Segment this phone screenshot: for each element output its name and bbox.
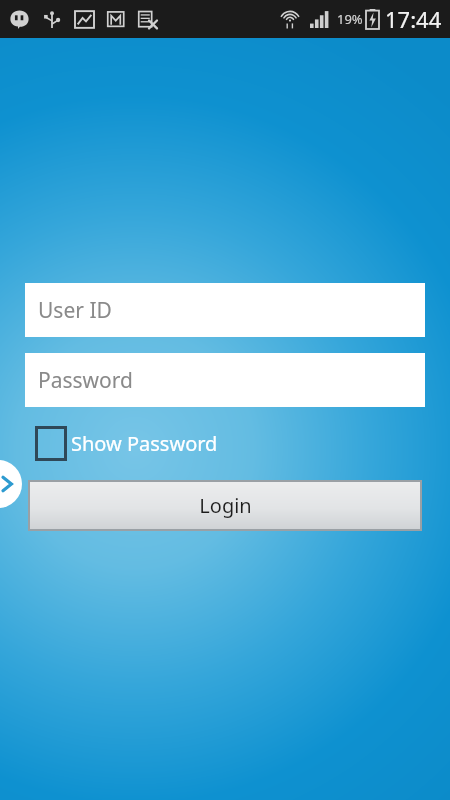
button[interactable]: Password xyxy=(25,353,425,407)
button[interactable]: User ID xyxy=(25,283,425,337)
button[interactable]: Login xyxy=(29,481,421,530)
button[interactable]: Open side panel xyxy=(0,460,22,508)
staticText: 17:44 xyxy=(385,4,442,34)
staticText: Login xyxy=(199,492,252,519)
staticText: User ID xyxy=(38,296,112,325)
staticText: Password xyxy=(38,366,133,395)
staticText: Show Password xyxy=(71,430,218,457)
staticText: 19% xyxy=(337,10,363,28)
button[interactable]: Show Password xyxy=(35,426,218,461)
